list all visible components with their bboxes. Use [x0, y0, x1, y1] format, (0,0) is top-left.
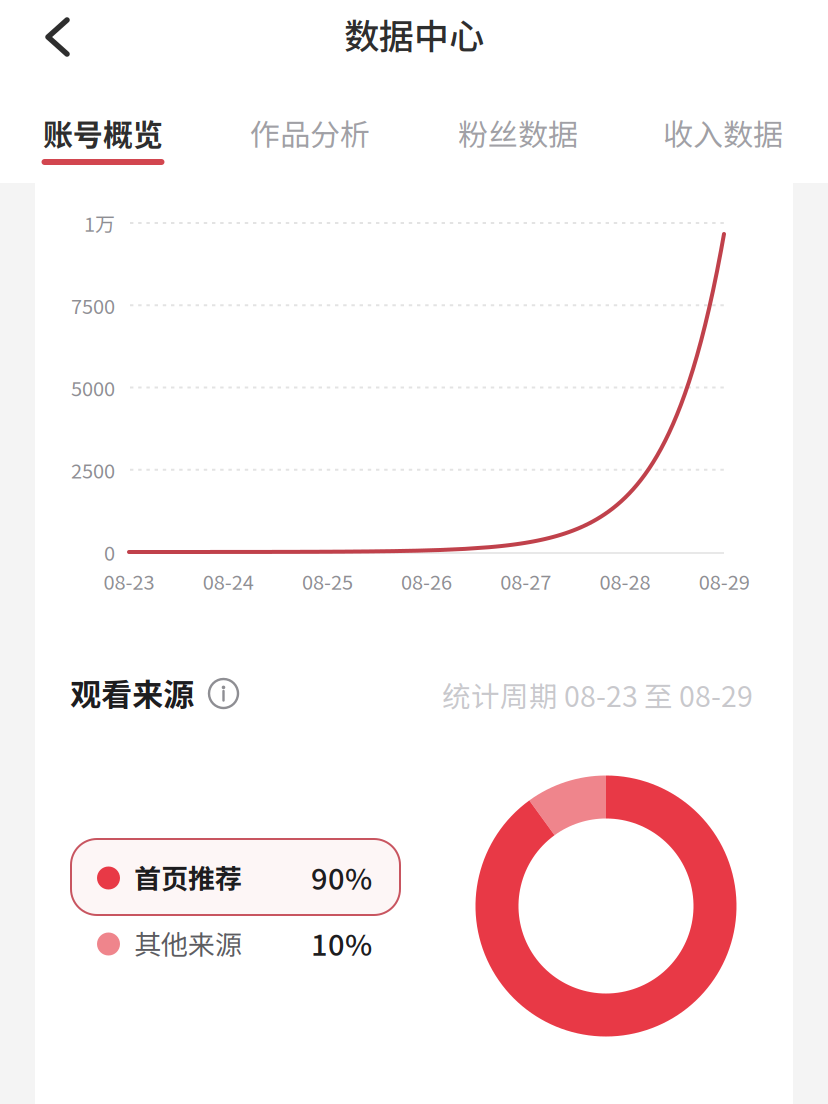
staticText: 账号概览 [43, 111, 163, 154]
staticText: 08-28 [599, 566, 650, 595]
button[interactable]: 作品分析 [220, 92, 400, 184]
staticText: 粉丝数据 [458, 111, 578, 154]
button[interactable]: 账号概览 [13, 92, 193, 184]
staticText: 2500 [71, 455, 115, 484]
staticText: 数据中心 [344, 9, 484, 59]
staticText: 08-25 [302, 566, 353, 595]
button[interactable]: 首页推荐 [71, 839, 400, 915]
staticText: 90% [311, 856, 372, 898]
staticText: 其他来源 [134, 923, 242, 963]
staticText: 10% [311, 922, 372, 964]
staticText: 作品分析 [250, 111, 370, 154]
staticText: 0 [104, 537, 115, 566]
staticText: 观看来源 [70, 670, 194, 715]
staticText: 08-29 [699, 566, 750, 595]
button[interactable]: 其他来源 [71, 911, 400, 975]
staticText: 08-26 [401, 566, 452, 595]
staticText: 统计周期 08-23 至 08-29 [442, 674, 753, 715]
staticText: 7500 [71, 291, 115, 320]
staticText: 08-24 [203, 566, 254, 595]
button[interactable]: 返回 [22, 0, 114, 74]
button[interactable]: 粉丝数据 [428, 92, 608, 184]
staticText: 收入数据 [663, 111, 783, 154]
staticText: 08-23 [103, 566, 154, 595]
button[interactable]: 收入数据 [633, 92, 813, 184]
staticText: 08-27 [500, 566, 551, 595]
button[interactable]: 说明 [202, 672, 246, 716]
staticText: 1万 [84, 208, 115, 237]
staticText: 首页推荐 [134, 857, 242, 897]
staticText: 5000 [71, 373, 115, 402]
